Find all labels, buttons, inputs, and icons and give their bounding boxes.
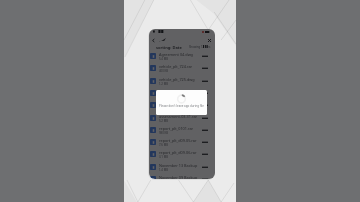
button[interactable]: Download <box>202 140 208 145</box>
staticText: report_plt_0101.rar <box>159 126 194 131</box>
staticText: Showing 12 files <box>189 45 211 49</box>
staticText: Agreement 04.dwg <box>159 52 193 57</box>
staticText: report_plt_d09.06.rar <box>159 150 197 155</box>
button[interactable]: Download <box>202 165 208 170</box>
staticText: 980 KB <box>159 131 169 135</box>
staticText: assessment-01.31.rar <box>159 101 198 106</box>
button[interactable]: vehicle_plt_725.dwg <box>150 75 208 87</box>
staticText: Please don't leave app during file trans… <box>156 104 207 108</box>
button[interactable]: assessment-03.31.rar <box>150 112 208 124</box>
button[interactable]: Close <box>206 37 213 44</box>
button[interactable]: assessment_04.dwg <box>150 87 208 99</box>
staticText: 1.4 MB <box>159 168 169 172</box>
staticText: 1.2 MB <box>159 82 169 86</box>
staticText: 3.1 MB <box>159 155 169 159</box>
button[interactable]: Download <box>202 152 208 157</box>
button[interactable]: Download <box>202 116 208 121</box>
staticText: November 13 Backup <box>159 163 198 168</box>
staticText: 5.2 MB <box>159 119 169 123</box>
button[interactable]: assessment-01.31.rar <box>150 99 208 111</box>
staticText: November 09 Backup <box>159 175 198 179</box>
button[interactable]: Download <box>202 177 208 179</box>
staticText: assessment_04.dwg <box>159 89 195 94</box>
button[interactable]: report_plt_d09.06.rar <box>150 148 208 160</box>
button[interactable]: November 13 Backup <box>150 161 208 173</box>
staticText: assessment-03.31.rar <box>159 114 198 119</box>
button[interactable]: Download <box>202 128 208 133</box>
button[interactable]: Download <box>202 66 208 71</box>
button[interactable]: Download <box>202 103 208 108</box>
button[interactable]: Back <box>150 37 157 44</box>
staticText: sorting: Date <box>156 45 182 50</box>
button[interactable]: November 09 Backup <box>150 173 208 179</box>
staticText: vehicle_plt_725.dwg <box>159 77 195 82</box>
button[interactable]: Download <box>202 91 208 96</box>
staticText: report_plt_d09.05.rar <box>159 138 197 143</box>
button[interactable]: Agreement 04.dwg <box>150 50 208 62</box>
staticText: 400 KB <box>159 69 169 73</box>
button[interactable]: Download <box>202 79 208 84</box>
staticText: 2.1 MB <box>159 106 169 110</box>
button[interactable]: vehicle_plt_724.rar <box>150 62 208 74</box>
staticText: vehicle_plt_724.rar <box>159 64 193 69</box>
button[interactable]: Download <box>202 54 208 59</box>
staticText: 5.4 MB <box>159 57 169 61</box>
button[interactable]: report_plt_d09.05.rar <box>150 136 208 148</box>
button[interactable]: report_plt_0101.rar <box>150 124 208 136</box>
staticText: 7.6 MB <box>159 143 169 147</box>
